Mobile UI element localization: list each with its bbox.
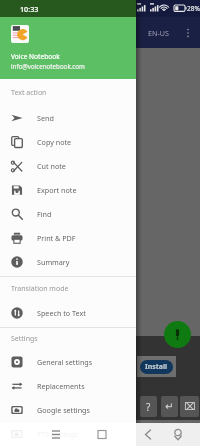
button[interactable]: ⌧ — [180, 396, 199, 417]
button[interactable]: More options — [180, 25, 196, 41]
button[interactable]: Replacements — [0, 374, 136, 398]
staticText: Text action — [11, 88, 47, 98]
button[interactable]: Cut note — [0, 154, 136, 178]
staticText: EN-US — [148, 28, 169, 38]
button[interactable]: Summary — [0, 250, 136, 274]
button[interactable]: Record — [164, 321, 191, 348]
staticText: Speech to Text — [37, 308, 86, 318]
staticText: Cut note — [37, 161, 66, 171]
staticText: Translation mode — [11, 284, 69, 294]
button[interactable]: ↵ — [161, 396, 178, 417]
staticText: General settings — [37, 357, 93, 367]
button[interactable]: Google settings — [0, 398, 136, 422]
staticText: ? — [146, 400, 151, 414]
button[interactable]: Speech to Text — [0, 301, 136, 325]
staticText: Google settings — [37, 405, 90, 415]
button[interactable]: Find — [0, 202, 136, 226]
staticText: Settings — [11, 334, 38, 344]
staticText: TTS settings — [37, 429, 78, 439]
button[interactable]: Export note — [0, 178, 136, 202]
staticText: 10:33 — [20, 4, 39, 14]
button[interactable]: TTS settings — [0, 422, 136, 446]
button[interactable]: Print & PDF — [0, 226, 136, 250]
button[interactable]: Overview — [90, 423, 114, 446]
button[interactable]: General settings — [0, 350, 136, 374]
staticText: info@voicenotebook.com — [11, 62, 85, 70]
staticText: Voice Notebook — [11, 52, 60, 61]
staticText: Install — [145, 362, 168, 372]
staticText: Export note — [37, 185, 77, 195]
button[interactable]: Copy note — [0, 130, 136, 154]
staticText: 28% — [187, 4, 200, 13]
button[interactable]: Recents — [44, 423, 68, 446]
staticText: Find — [37, 209, 52, 219]
button[interactable]: ? — [140, 396, 157, 417]
staticText: Summary — [37, 257, 70, 267]
button[interactable]: Back — [136, 423, 160, 446]
staticText: ↵ — [165, 401, 174, 413]
staticText: Replacements — [37, 381, 85, 391]
button[interactable]: Send — [0, 106, 136, 130]
staticText: ⌧ — [184, 401, 196, 413]
button[interactable]: Install — [140, 360, 173, 374]
staticText: Copy note — [37, 137, 72, 147]
staticText: Send — [37, 113, 54, 123]
button[interactable]: Home — [166, 423, 190, 446]
staticText: Print & PDF — [37, 233, 76, 243]
